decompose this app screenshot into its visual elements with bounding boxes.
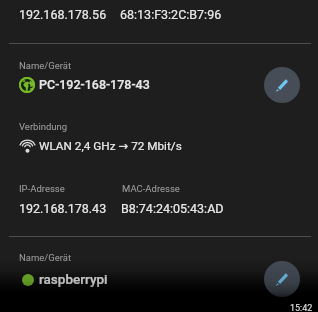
staticText: Name/Gerät: [19, 252, 72, 263]
staticText: Verbindung: [19, 121, 68, 132]
staticText: B8:74:24:05:43:AD: [121, 201, 224, 216]
other: Internetzugang: [19, 77, 35, 93]
staticText: Name/Gerät: [19, 60, 72, 71]
staticText: IP-Adresse: [19, 183, 65, 194]
other: WLAN: [19, 138, 36, 155]
staticText: PC-192-168-178-43: [39, 77, 150, 92]
staticText: MAC-Adresse: [122, 183, 180, 194]
staticText: raspberrypi: [39, 271, 108, 287]
staticText: 15:42: [290, 303, 313, 312]
button[interactable]: Bearbeiten: [264, 261, 300, 297]
staticText: WLAN 2,4 GHz → 72 Mbit/s: [39, 139, 182, 153]
staticText: 192.168.178.43: [19, 201, 107, 216]
staticText: 192.168.178.56: [19, 7, 107, 22]
button[interactable]: Bearbeiten: [264, 67, 300, 103]
staticText: 68:13:F3:2C:B7:96: [120, 7, 222, 22]
